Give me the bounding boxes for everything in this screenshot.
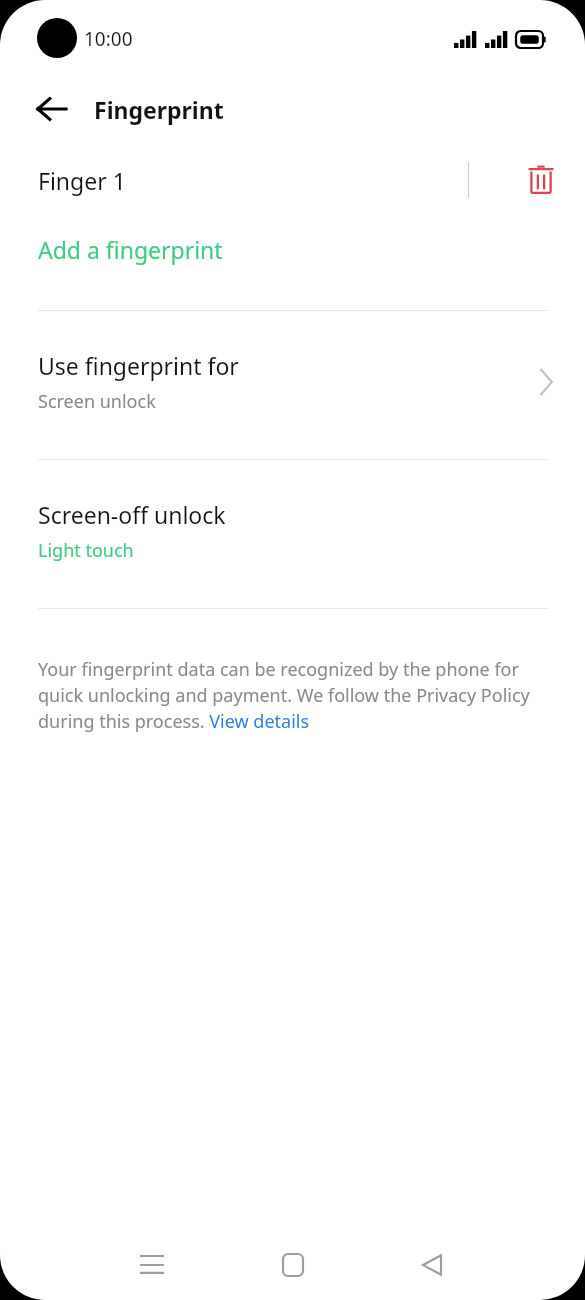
staticText: Screen-off unlock	[38, 499, 226, 530]
staticText: Your fingerprint data can be recognized …	[38, 657, 530, 734]
staticText: Fingerprint	[94, 94, 224, 125]
staticText: Use fingerprint for	[38, 350, 239, 381]
button[interactable]: Back	[402, 1235, 462, 1295]
staticText: Add a fingerprint	[38, 234, 223, 265]
button[interactable]: Recent apps	[122, 1235, 182, 1295]
staticText: Screen unlock	[38, 389, 156, 414]
staticText: Finger 1	[38, 165, 126, 196]
staticText: Light touch	[38, 538, 134, 563]
button[interactable]: Add a fingerprint	[0, 218, 585, 280]
button[interactable]: Home	[263, 1235, 323, 1295]
button[interactable]: Finger 1	[0, 142, 585, 218]
button[interactable]: Your fingerprint data can be recognized …	[38, 657, 530, 734]
button[interactable]: Use fingerprint for	[0, 311, 585, 459]
button[interactable]: Back	[24, 81, 80, 137]
button[interactable]: Screen-off unlock	[0, 460, 585, 608]
staticText: 10:00	[84, 26, 133, 52]
button[interactable]: Delete fingerprint	[515, 154, 567, 206]
